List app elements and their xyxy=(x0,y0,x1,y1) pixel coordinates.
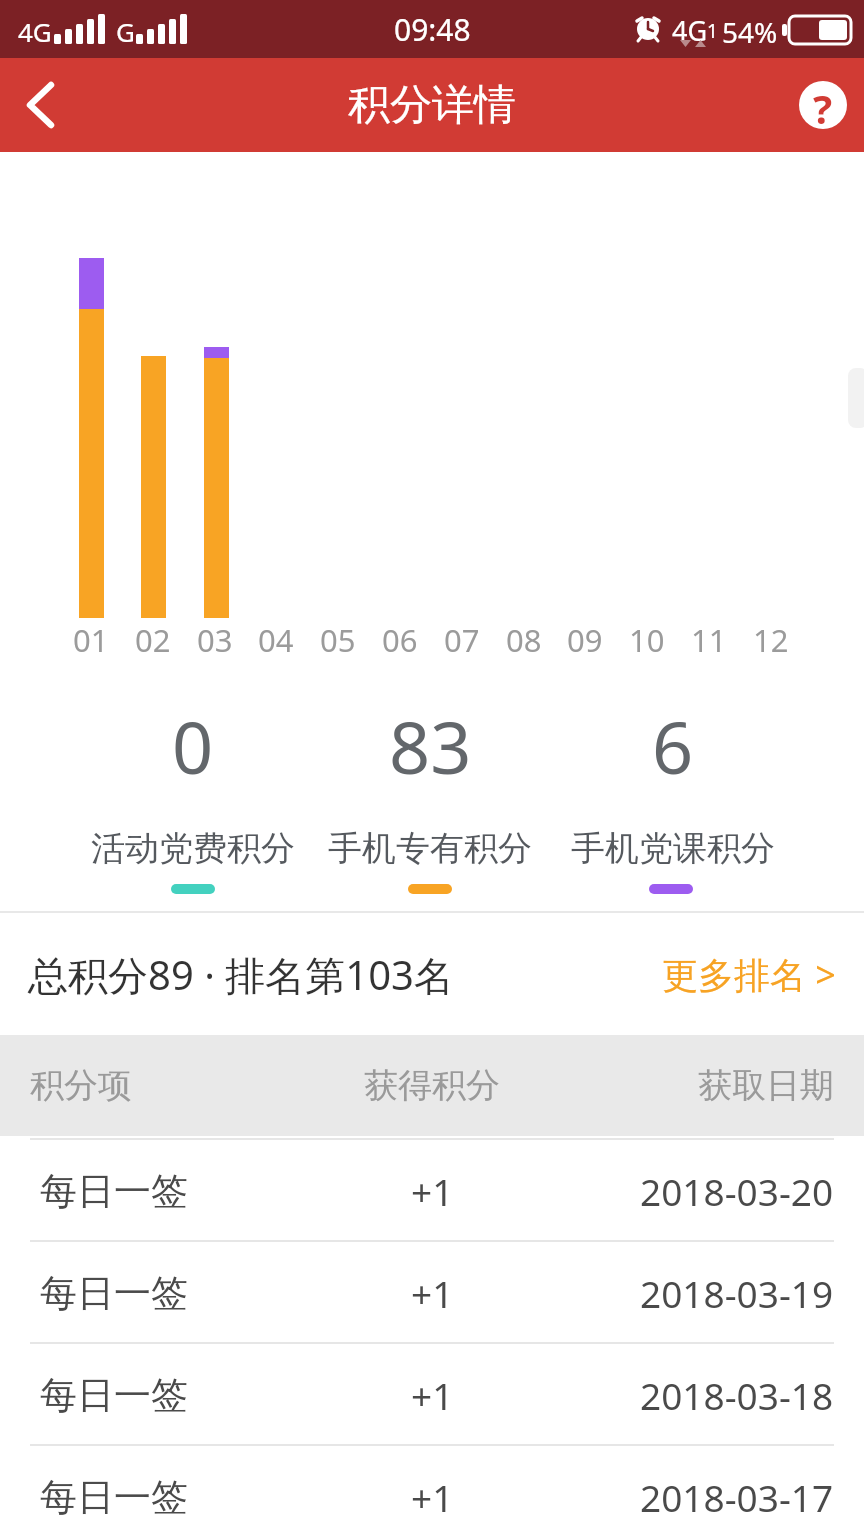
staticText: 07 xyxy=(444,619,480,661)
staticText: 09:48 xyxy=(394,9,471,50)
staticText: 4G xyxy=(672,12,708,49)
staticText: +1 xyxy=(411,1370,454,1420)
staticText: 03 xyxy=(197,619,233,661)
staticText: 06 xyxy=(382,619,418,661)
button[interactable]: ? xyxy=(799,81,847,129)
staticText: 手机专有积分 xyxy=(328,827,532,870)
staticText: 每日一签 xyxy=(40,1372,188,1419)
staticText: +1 xyxy=(411,1268,454,1318)
staticText: 04 xyxy=(258,619,294,661)
staticText: 活动党费积分 xyxy=(91,827,295,870)
staticText: 4G xyxy=(18,14,52,49)
staticText: ? xyxy=(813,81,833,129)
button[interactable] xyxy=(0,58,80,152)
button[interactable]: 每日一签 xyxy=(0,1446,864,1536)
staticText: 09 xyxy=(567,619,603,661)
staticText: 更多排名 > xyxy=(662,950,836,999)
staticText: 每日一签 xyxy=(40,1270,188,1317)
staticText: +1 xyxy=(411,1166,454,1216)
staticText: 6 xyxy=(652,697,694,795)
staticText: 获取日期 xyxy=(698,1064,834,1107)
staticText: 08 xyxy=(506,619,542,661)
staticText: 1 xyxy=(707,18,718,44)
staticText: 2018-03-19 xyxy=(640,1268,834,1318)
button[interactable]: 每日一签 xyxy=(0,1344,864,1446)
staticText: 2018-03-18 xyxy=(640,1370,834,1420)
staticText: 0 xyxy=(172,697,214,795)
staticText: 总积分89 · 排名第103名 xyxy=(28,947,454,1002)
staticText: 54% xyxy=(722,13,778,51)
staticText: +1 xyxy=(411,1472,454,1522)
staticText: 2018-03-17 xyxy=(640,1472,834,1522)
button[interactable]: 每日一签 xyxy=(0,1140,864,1242)
staticText: 05 xyxy=(320,619,356,661)
staticText: 2018-03-20 xyxy=(640,1166,834,1216)
staticText: 积分详情 xyxy=(348,79,516,132)
button[interactable]: 每日一签 xyxy=(0,1242,864,1344)
staticText: 获得积分 xyxy=(364,1064,500,1107)
staticText: 10 xyxy=(629,619,665,661)
staticText: 83 xyxy=(389,697,472,795)
staticText: 02 xyxy=(135,619,171,661)
staticText: G xyxy=(116,14,135,49)
staticText: 每日一签 xyxy=(40,1168,188,1215)
staticText: 01 xyxy=(73,619,109,661)
staticText: 手机党课积分 xyxy=(571,827,775,870)
staticText: 积分项 xyxy=(30,1064,132,1107)
staticText: 12 xyxy=(753,619,789,661)
button[interactable]: 总积分89 · 排名第103名 xyxy=(28,913,836,1035)
staticText: 每日一签 xyxy=(40,1474,188,1521)
staticText: 11 xyxy=(691,619,727,661)
